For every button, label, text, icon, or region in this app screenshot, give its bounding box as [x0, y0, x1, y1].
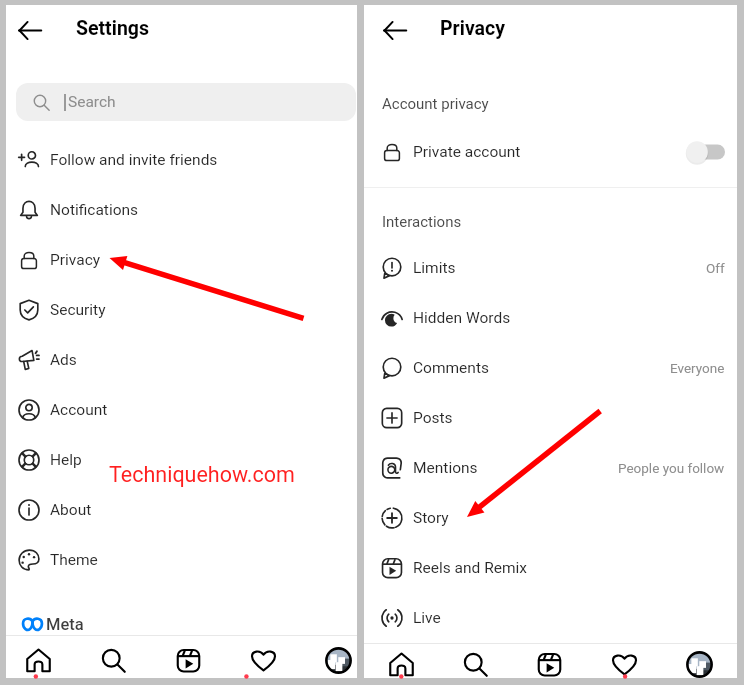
staticText: People you follow	[618, 460, 725, 476]
button[interactable]: Back	[375, 10, 415, 50]
staticText: Meta	[46, 615, 84, 634]
button[interactable]: Hidden Words	[364, 293, 737, 343]
button[interactable]: Reels and Remix	[364, 543, 737, 593]
button[interactable]: Posts	[364, 393, 737, 443]
button[interactable]: Profile	[301, 639, 376, 681]
button[interactable]: About	[6, 485, 357, 535]
staticText: Interactions	[382, 213, 462, 231]
button[interactable]: Follow and invite friends	[6, 135, 357, 185]
staticText: Privacy	[50, 251, 101, 269]
button[interactable]: Limits	[364, 243, 737, 293]
staticText: Posts	[413, 409, 453, 427]
button[interactable]: Back	[10, 10, 50, 50]
button[interactable]: Story	[364, 493, 737, 543]
staticText: Live	[413, 609, 441, 627]
staticText: Everyone	[670, 360, 725, 376]
staticText: Settings	[76, 17, 149, 40]
staticText: Account privacy	[382, 95, 489, 113]
staticText: Story	[413, 509, 449, 527]
button[interactable]: Likes	[587, 647, 662, 681]
staticText: Reels and Remix	[413, 559, 528, 577]
staticText: Techniquehow.com	[109, 462, 295, 487]
button[interactable]: Privacy	[6, 235, 357, 285]
staticText: Comments	[413, 359, 489, 377]
button[interactable]: Security	[6, 285, 357, 335]
button[interactable]: Search	[76, 639, 151, 681]
staticText: Off	[706, 260, 725, 276]
staticText: Notifications	[50, 201, 139, 219]
button[interactable]: Mentions	[364, 443, 737, 493]
button[interactable]: Comments	[364, 343, 737, 393]
staticText: Hidden Words	[413, 309, 511, 327]
button[interactable]: Theme	[6, 535, 357, 585]
button[interactable]: Likes	[226, 639, 301, 681]
button[interactable]: Search	[16, 83, 356, 121]
button[interactable]: Private account	[364, 127, 737, 177]
button[interactable]: Search	[438, 647, 512, 681]
button[interactable]: Reels	[151, 639, 226, 681]
staticText: Ads	[50, 351, 77, 369]
staticText: Mentions	[413, 459, 478, 477]
button[interactable]: Reels	[512, 647, 587, 681]
staticText: Limits	[413, 259, 456, 277]
button[interactable]: Home	[364, 647, 438, 681]
button[interactable]: Home	[1, 639, 76, 681]
button[interactable]: Account	[6, 385, 357, 435]
button[interactable]: Profile	[662, 647, 737, 681]
button[interactable]: Notifications	[6, 185, 357, 235]
button[interactable]: Help	[6, 435, 357, 485]
staticText: Privacy	[440, 17, 506, 40]
button[interactable]: Live	[364, 593, 737, 643]
button[interactable]: Ads	[6, 335, 357, 385]
staticText: Security	[50, 301, 106, 319]
staticText: Theme	[50, 551, 98, 569]
staticText: Account	[50, 401, 108, 419]
staticText: Search	[68, 93, 116, 111]
button[interactable]	[688, 140, 725, 164]
staticText: Help	[50, 451, 82, 469]
staticText: Private account	[413, 143, 521, 161]
staticText: About	[50, 501, 92, 519]
staticText: Follow and invite friends	[50, 151, 218, 169]
